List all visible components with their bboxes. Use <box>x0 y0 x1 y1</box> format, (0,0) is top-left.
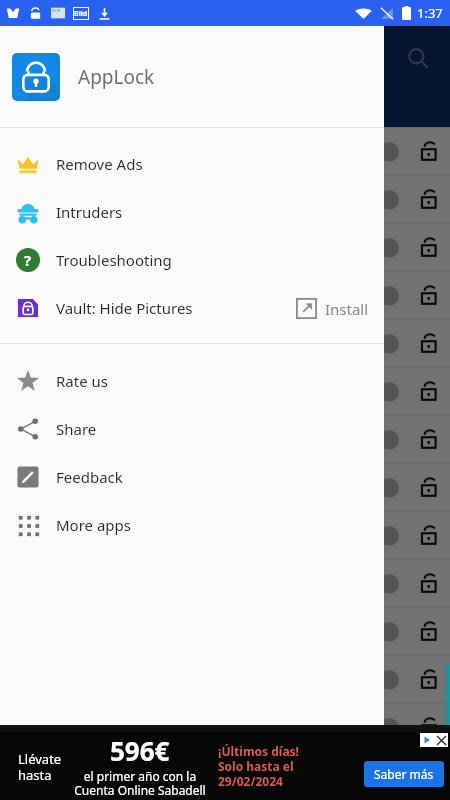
staticText: Llévate hasta <box>18 750 62 783</box>
staticText: Saber más <box>374 766 434 782</box>
button[interactable]: Feedback <box>0 453 384 501</box>
staticText: Rate us <box>56 371 108 391</box>
button[interactable]: Search <box>394 34 442 82</box>
button[interactable]: Llévate hasta <box>0 732 450 800</box>
staticText: Bild <box>74 9 88 19</box>
staticText: AppLock <box>78 64 155 90</box>
button[interactable]: Install <box>296 298 384 319</box>
button[interactable]: Remove Ads <box>0 140 384 188</box>
staticText: 596€ <box>110 733 170 768</box>
staticText: el primer año con la Cuenta Online Sabad… <box>74 768 206 799</box>
staticText: ? <box>24 250 32 270</box>
button[interactable]: AppLock <box>0 26 384 127</box>
button[interactable]: Share <box>0 405 384 453</box>
button[interactable]: More apps <box>0 501 384 549</box>
staticText: Intruders <box>56 202 123 222</box>
staticText: ¡Últimos días! Solo hasta el 29/02/2024 <box>218 743 299 789</box>
staticText: Share <box>56 419 97 439</box>
button[interactable]: Saber más <box>364 761 444 787</box>
staticText: Vault: Hide Pictures <box>56 298 193 318</box>
button[interactable]: Rate us <box>0 357 384 405</box>
staticText: More apps <box>56 515 131 535</box>
button[interactable]: ? <box>0 236 384 284</box>
staticText: Install <box>325 299 369 319</box>
staticText: Remove Ads <box>56 154 143 174</box>
staticText: Feedback <box>56 467 123 487</box>
button[interactable]: Vault: Hide Pictures <box>0 284 384 332</box>
button[interactable]: Intruders <box>0 188 384 236</box>
button[interactable]: Close ad <box>434 733 448 747</box>
staticText: 1:37 <box>417 4 443 22</box>
staticText: Troubleshooting <box>56 250 172 270</box>
